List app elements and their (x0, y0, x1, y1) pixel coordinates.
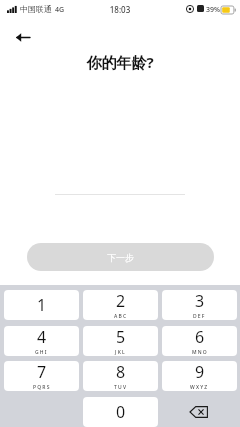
staticText: DEF (193, 313, 206, 320)
staticText: 9 (195, 361, 205, 383)
button[interactable]: 9 (162, 361, 237, 391)
button[interactable]: 1 (4, 290, 79, 320)
button[interactable]: 返回 (8, 22, 38, 52)
staticText: ABC (114, 313, 128, 320)
staticText: 7 (37, 361, 47, 383)
staticText: 你的年龄? (0, 52, 240, 72)
button[interactable]: 4 (4, 326, 79, 356)
staticText: 0 (116, 401, 126, 423)
button[interactable]: 3 (162, 290, 237, 320)
button[interactable]: 下一步 (27, 243, 214, 271)
staticText: PQRS (33, 384, 51, 391)
staticText: 中国联通 (20, 4, 52, 14)
staticText: 39% (206, 5, 220, 15)
staticText: 18:03 (0, 4, 240, 15)
staticText: 1 (37, 294, 47, 316)
staticText: 2 (116, 290, 126, 312)
button[interactable]: 6 (162, 326, 237, 356)
button[interactable]: 7 (4, 361, 79, 391)
staticText: 5 (116, 326, 126, 348)
staticText: 3 (195, 290, 205, 312)
button[interactable]: 8 (83, 361, 158, 391)
staticText: MNO (192, 349, 208, 356)
button[interactable]: 2 (83, 290, 158, 320)
staticText: 下一步 (107, 252, 134, 263)
staticText: 4G (55, 5, 65, 15)
staticText: TUV (114, 384, 128, 391)
button[interactable]: 5 (83, 326, 158, 356)
button[interactable]: 0 (83, 397, 158, 427)
staticText: 8 (116, 361, 126, 383)
staticText: JKL (115, 349, 126, 356)
staticText: 4 (37, 326, 47, 348)
button[interactable]: 删除 (162, 397, 237, 427)
staticText: GHI (35, 349, 48, 356)
staticText: 6 (195, 326, 205, 348)
staticText: WXYZ (190, 384, 209, 391)
